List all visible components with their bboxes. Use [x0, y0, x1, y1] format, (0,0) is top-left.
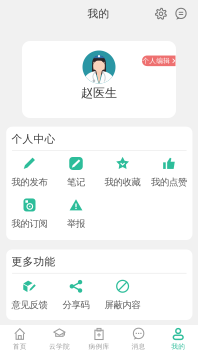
button[interactable]: 我的收藏: [100, 155, 146, 189]
staticText: 我的收藏: [105, 176, 141, 188]
staticText: 我的: [87, 7, 109, 20]
button[interactable]: Settings: [150, 3, 172, 25]
button[interactable]: 我的点赞: [146, 155, 192, 189]
staticText: 病例库: [88, 342, 109, 351]
staticText: 首页: [13, 342, 27, 351]
staticText: 我的点赞: [151, 176, 187, 188]
button[interactable]: 个人编辑: [142, 55, 175, 66]
button[interactable]: 我的: [158, 325, 198, 352]
staticText: 更多功能: [11, 255, 55, 268]
staticText: 我的: [171, 342, 185, 351]
button[interactable]: 我的发布: [6, 155, 52, 189]
button[interactable]: 首页: [0, 325, 40, 352]
button[interactable]: Messages: [170, 3, 192, 25]
button[interactable]: 举报: [53, 197, 99, 231]
button[interactable]: 消息: [119, 325, 158, 352]
button[interactable]: 笔记: [53, 155, 99, 189]
button[interactable]: 分享码: [53, 278, 99, 312]
staticText: 个人中心: [11, 132, 55, 145]
button[interactable]: 意见反馈: [6, 278, 52, 312]
button[interactable]: 云学院: [40, 325, 79, 352]
staticText: 消息: [132, 342, 146, 351]
staticText: 笔记: [67, 176, 85, 188]
button[interactable]: 病例库: [79, 325, 119, 352]
staticText: 我的订阅: [11, 218, 47, 229]
staticText: 屏蔽内容: [105, 299, 141, 311]
staticText: 举报: [67, 218, 85, 229]
staticText: 云学院: [49, 342, 70, 351]
button[interactable]: 屏蔽内容: [100, 278, 146, 312]
staticText: 我的发布: [11, 176, 47, 188]
staticText: 个人编辑: [142, 57, 170, 65]
staticText: 赵医生: [81, 86, 117, 100]
staticText: 意见反馈: [11, 299, 47, 311]
staticText: 分享码: [62, 299, 89, 311]
button[interactable]: 我的订阅: [6, 197, 52, 231]
